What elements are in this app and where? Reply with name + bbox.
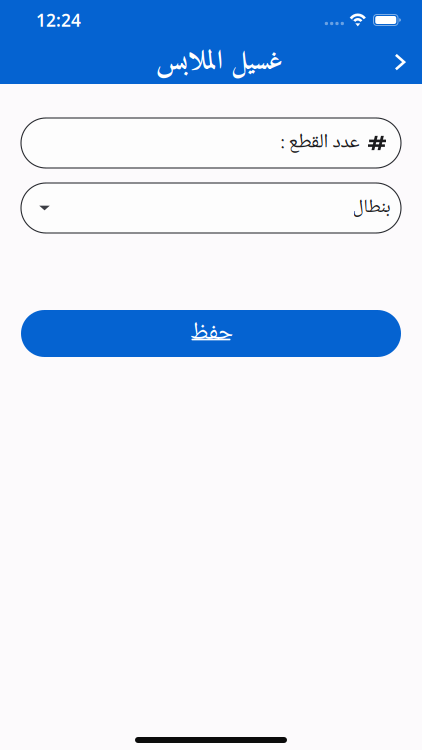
staticText: غسيل الملابس [155, 39, 282, 85]
button[interactable]: Back [380, 41, 420, 83]
button[interactable]: بنطال [0, 183, 422, 233]
button[interactable]: حفظ [0, 310, 422, 357]
staticText: حفظ [189, 313, 232, 354]
staticText: عدد القطع : [280, 126, 359, 160]
staticText: بنطال [352, 192, 390, 224]
staticText: 12:24 [36, 8, 81, 31]
